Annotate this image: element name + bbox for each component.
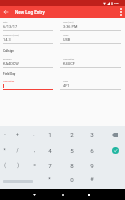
staticText: 6/13/17 <box>3 24 18 29</box>
button[interactable]: Transmitted <box>60 58 121 68</box>
button[interactable]: 0 <box>60 173 82 189</box>
staticText: 5 <box>70 147 74 154</box>
staticText: KA4DCW <box>3 61 19 66</box>
button[interactable]: Home <box>57 189 68 200</box>
staticText: Callsign <box>3 49 14 53</box>
button[interactable]: Backspace <box>104 127 125 143</box>
button[interactable]: Date <box>3 21 53 31</box>
button[interactable]: * <box>0 142 11 158</box>
staticText: , <box>34 147 35 153</box>
button[interactable]: Done <box>104 142 125 158</box>
staticText: Mode <box>63 34 69 36</box>
staticText: * <box>3 147 6 153</box>
button[interactable]: Received <box>3 58 53 68</box>
staticText: Date <box>3 21 8 23</box>
button[interactable]: / <box>11 142 26 158</box>
staticText: 2 <box>70 131 74 138</box>
button[interactable]: 6 <box>82 142 104 158</box>
staticText: 6 <box>90 147 94 154</box>
button[interactable]: Time (UTC) <box>60 21 121 31</box>
staticText: + <box>16 131 19 137</box>
button[interactable]: 9 <box>82 158 104 174</box>
button[interactable]: + <box>11 127 26 143</box>
staticText: USB <box>63 37 71 42</box>
button[interactable]: More options <box>113 6 125 18</box>
staticText: Transmitted <box>63 58 75 60</box>
staticText: 4F1 <box>63 83 70 88</box>
button[interactable]: Recents <box>83 189 94 200</box>
staticText: 14.3 <box>3 37 11 42</box>
staticText: * <box>48 176 51 183</box>
staticText: Class <box>63 80 69 82</box>
staticText: K4UCF <box>63 61 75 66</box>
button[interactable]: 5 <box>60 142 82 158</box>
staticText: 3:36 PM <box>63 24 78 29</box>
button[interactable]: 4 <box>41 142 60 158</box>
button[interactable]: - <box>0 127 11 143</box>
staticText: 0 <box>70 176 74 183</box>
staticText: 7 <box>48 162 52 169</box>
button[interactable]: Class <box>60 80 121 90</box>
button[interactable]: Hide keyboard <box>29 189 40 200</box>
button[interactable]: ( <box>0 158 11 174</box>
staticText: 4 <box>48 147 52 154</box>
staticText: 3:36 <box>114 2 119 5</box>
staticText: Received <box>3 58 12 60</box>
staticText: Field Day <box>3 72 16 76</box>
staticText: Transmitted <box>3 80 15 82</box>
button[interactable]: Frequency (MHz) <box>3 34 53 44</box>
staticText: # <box>90 176 94 183</box>
button[interactable]: 3 <box>82 127 104 143</box>
staticText: 3 <box>90 131 94 138</box>
button[interactable]: 2 <box>60 127 82 143</box>
button[interactable]: = <box>26 158 42 174</box>
staticText: = <box>33 162 36 168</box>
staticText: ( <box>4 162 6 168</box>
staticText: Frequency (MHz) <box>3 34 19 36</box>
button[interactable]: Mode <box>60 34 121 44</box>
button[interactable]: Space <box>0 173 41 189</box>
staticText: ) <box>17 162 19 168</box>
staticText: - <box>4 131 6 137</box>
button[interactable]: * <box>41 173 60 189</box>
button[interactable]: 1 <box>41 127 60 143</box>
staticText: 8 <box>70 162 74 169</box>
staticText: . <box>33 131 35 137</box>
button[interactable]: # <box>82 173 104 189</box>
button[interactable]: 8 <box>60 158 82 174</box>
button[interactable]: ) <box>11 158 26 174</box>
staticText: Time (UTC) <box>63 21 74 23</box>
staticText: 9 <box>90 162 94 169</box>
button[interactable]: Back <box>0 6 11 17</box>
staticText: 1 <box>48 131 52 138</box>
button[interactable]: , <box>26 142 42 158</box>
staticText: / <box>16 147 19 153</box>
button[interactable]: 7 <box>41 158 60 174</box>
staticText: New Log Entry <box>15 10 45 15</box>
button[interactable]: Transmitted <box>3 80 53 90</box>
